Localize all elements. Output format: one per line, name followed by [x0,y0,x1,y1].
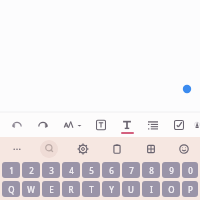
button[interactable]: Undo [4,112,30,137]
staticText: 8 [149,165,154,176]
button[interactable]: Checklist [166,112,192,137]
button[interactable]: E [42,181,60,197]
button[interactable]: 7 [122,162,140,178]
button[interactable]: U [122,181,140,197]
button[interactable]: Y [102,181,120,197]
staticText: E [49,184,54,195]
staticText: 6 [109,165,114,176]
staticText: 3 [49,165,54,176]
button[interactable]: Alignment [140,112,166,137]
button[interactable]: W [22,181,40,197]
button[interactable]: P [182,181,198,197]
button[interactable]: 2 [22,162,40,178]
button[interactable]: Q [2,181,20,197]
staticText: O [168,184,175,195]
staticText: 0 [188,165,193,176]
button[interactable]: Stickers [134,137,168,160]
button[interactable]: 4 [62,162,80,178]
staticText: 1 [9,165,14,176]
button[interactable]: 5 [82,162,100,178]
button[interactable]: Paragraph style [88,112,114,137]
button[interactable]: 3 [42,162,60,178]
button[interactable]: 6 [102,162,120,178]
staticText: P [188,184,193,195]
button[interactable]: Text size [56,112,88,137]
staticText: T [89,184,94,195]
button[interactable]: 8 [142,162,160,178]
button[interactable]: Search [32,137,66,160]
button[interactable]: 1 [2,162,20,178]
button[interactable]: O [162,181,180,197]
button[interactable]: 9 [162,162,180,178]
button[interactable]: Clipboard [100,137,134,160]
button[interactable]: Keyboard settings [66,137,100,160]
staticText: Y [109,184,114,195]
staticText: 5 [89,165,94,176]
button[interactable]: Format text [114,112,140,137]
staticText: Q [8,184,15,195]
staticText: 9 [169,165,174,176]
staticText: 4 [69,165,74,176]
button[interactable]: T [82,181,100,197]
staticText: U [128,184,134,195]
button[interactable]: I [142,181,160,197]
staticText: R [68,184,74,195]
staticText: I [150,184,153,195]
staticText: W [27,184,35,195]
staticText: 7 [129,165,134,176]
button[interactable]: R [62,181,80,197]
button[interactable]: Drawing tools [194,114,200,135]
button[interactable]: More options [2,137,32,160]
button[interactable]: Emoji [168,137,200,160]
button[interactable]: Redo [30,112,56,137]
staticText: 2 [29,165,34,176]
button[interactable]: 0 [182,162,198,178]
